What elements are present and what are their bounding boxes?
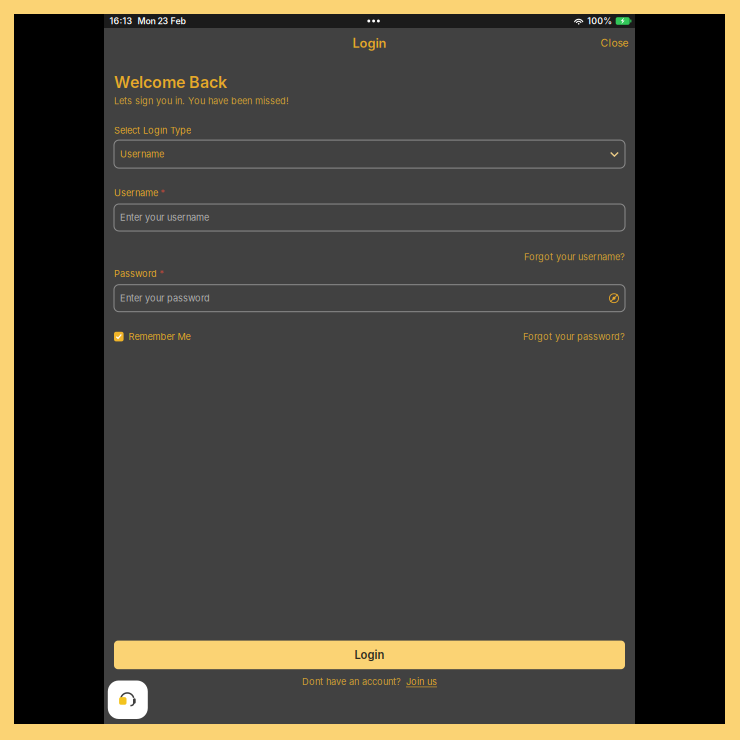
staticText: Remember Me	[129, 331, 191, 342]
staticText: 100%	[587, 16, 612, 26]
staticText: Username	[120, 148, 164, 160]
staticText: Username	[114, 187, 158, 198]
button[interactable]: Join us	[406, 676, 437, 687]
staticText: 16:13	[109, 16, 132, 26]
staticText: Login	[354, 648, 384, 662]
staticText: Lets sign you in. You have been missed!	[114, 95, 289, 106]
staticText: Login	[352, 35, 386, 51]
staticText: Password	[114, 268, 157, 279]
button[interactable]: Login	[114, 641, 625, 669]
staticText: Dont have an account?	[302, 676, 401, 687]
button[interactable]: Forgot your password?	[523, 331, 625, 342]
staticText: Close	[600, 37, 628, 49]
staticText: Enter your password	[120, 293, 210, 304]
staticText: *	[159, 268, 163, 279]
staticText: Welcome Back	[114, 72, 227, 92]
button[interactable]: Username	[114, 140, 625, 168]
staticText: Join us	[406, 676, 437, 687]
button[interactable]: Close	[595, 33, 633, 53]
button[interactable]: Contact support	[108, 680, 148, 719]
staticText: Forgot your password?	[523, 331, 625, 342]
staticText: Enter your username	[120, 212, 209, 223]
staticText: Select Login Type	[114, 125, 191, 136]
button[interactable]: Remember Me	[114, 331, 191, 342]
staticText: Mon 23 Feb	[137, 16, 185, 26]
button[interactable]: Forgot your username?	[524, 252, 625, 262]
staticText: Forgot your username?	[524, 251, 625, 262]
staticText: *	[160, 188, 164, 198]
button[interactable]: Show password	[609, 293, 619, 303]
